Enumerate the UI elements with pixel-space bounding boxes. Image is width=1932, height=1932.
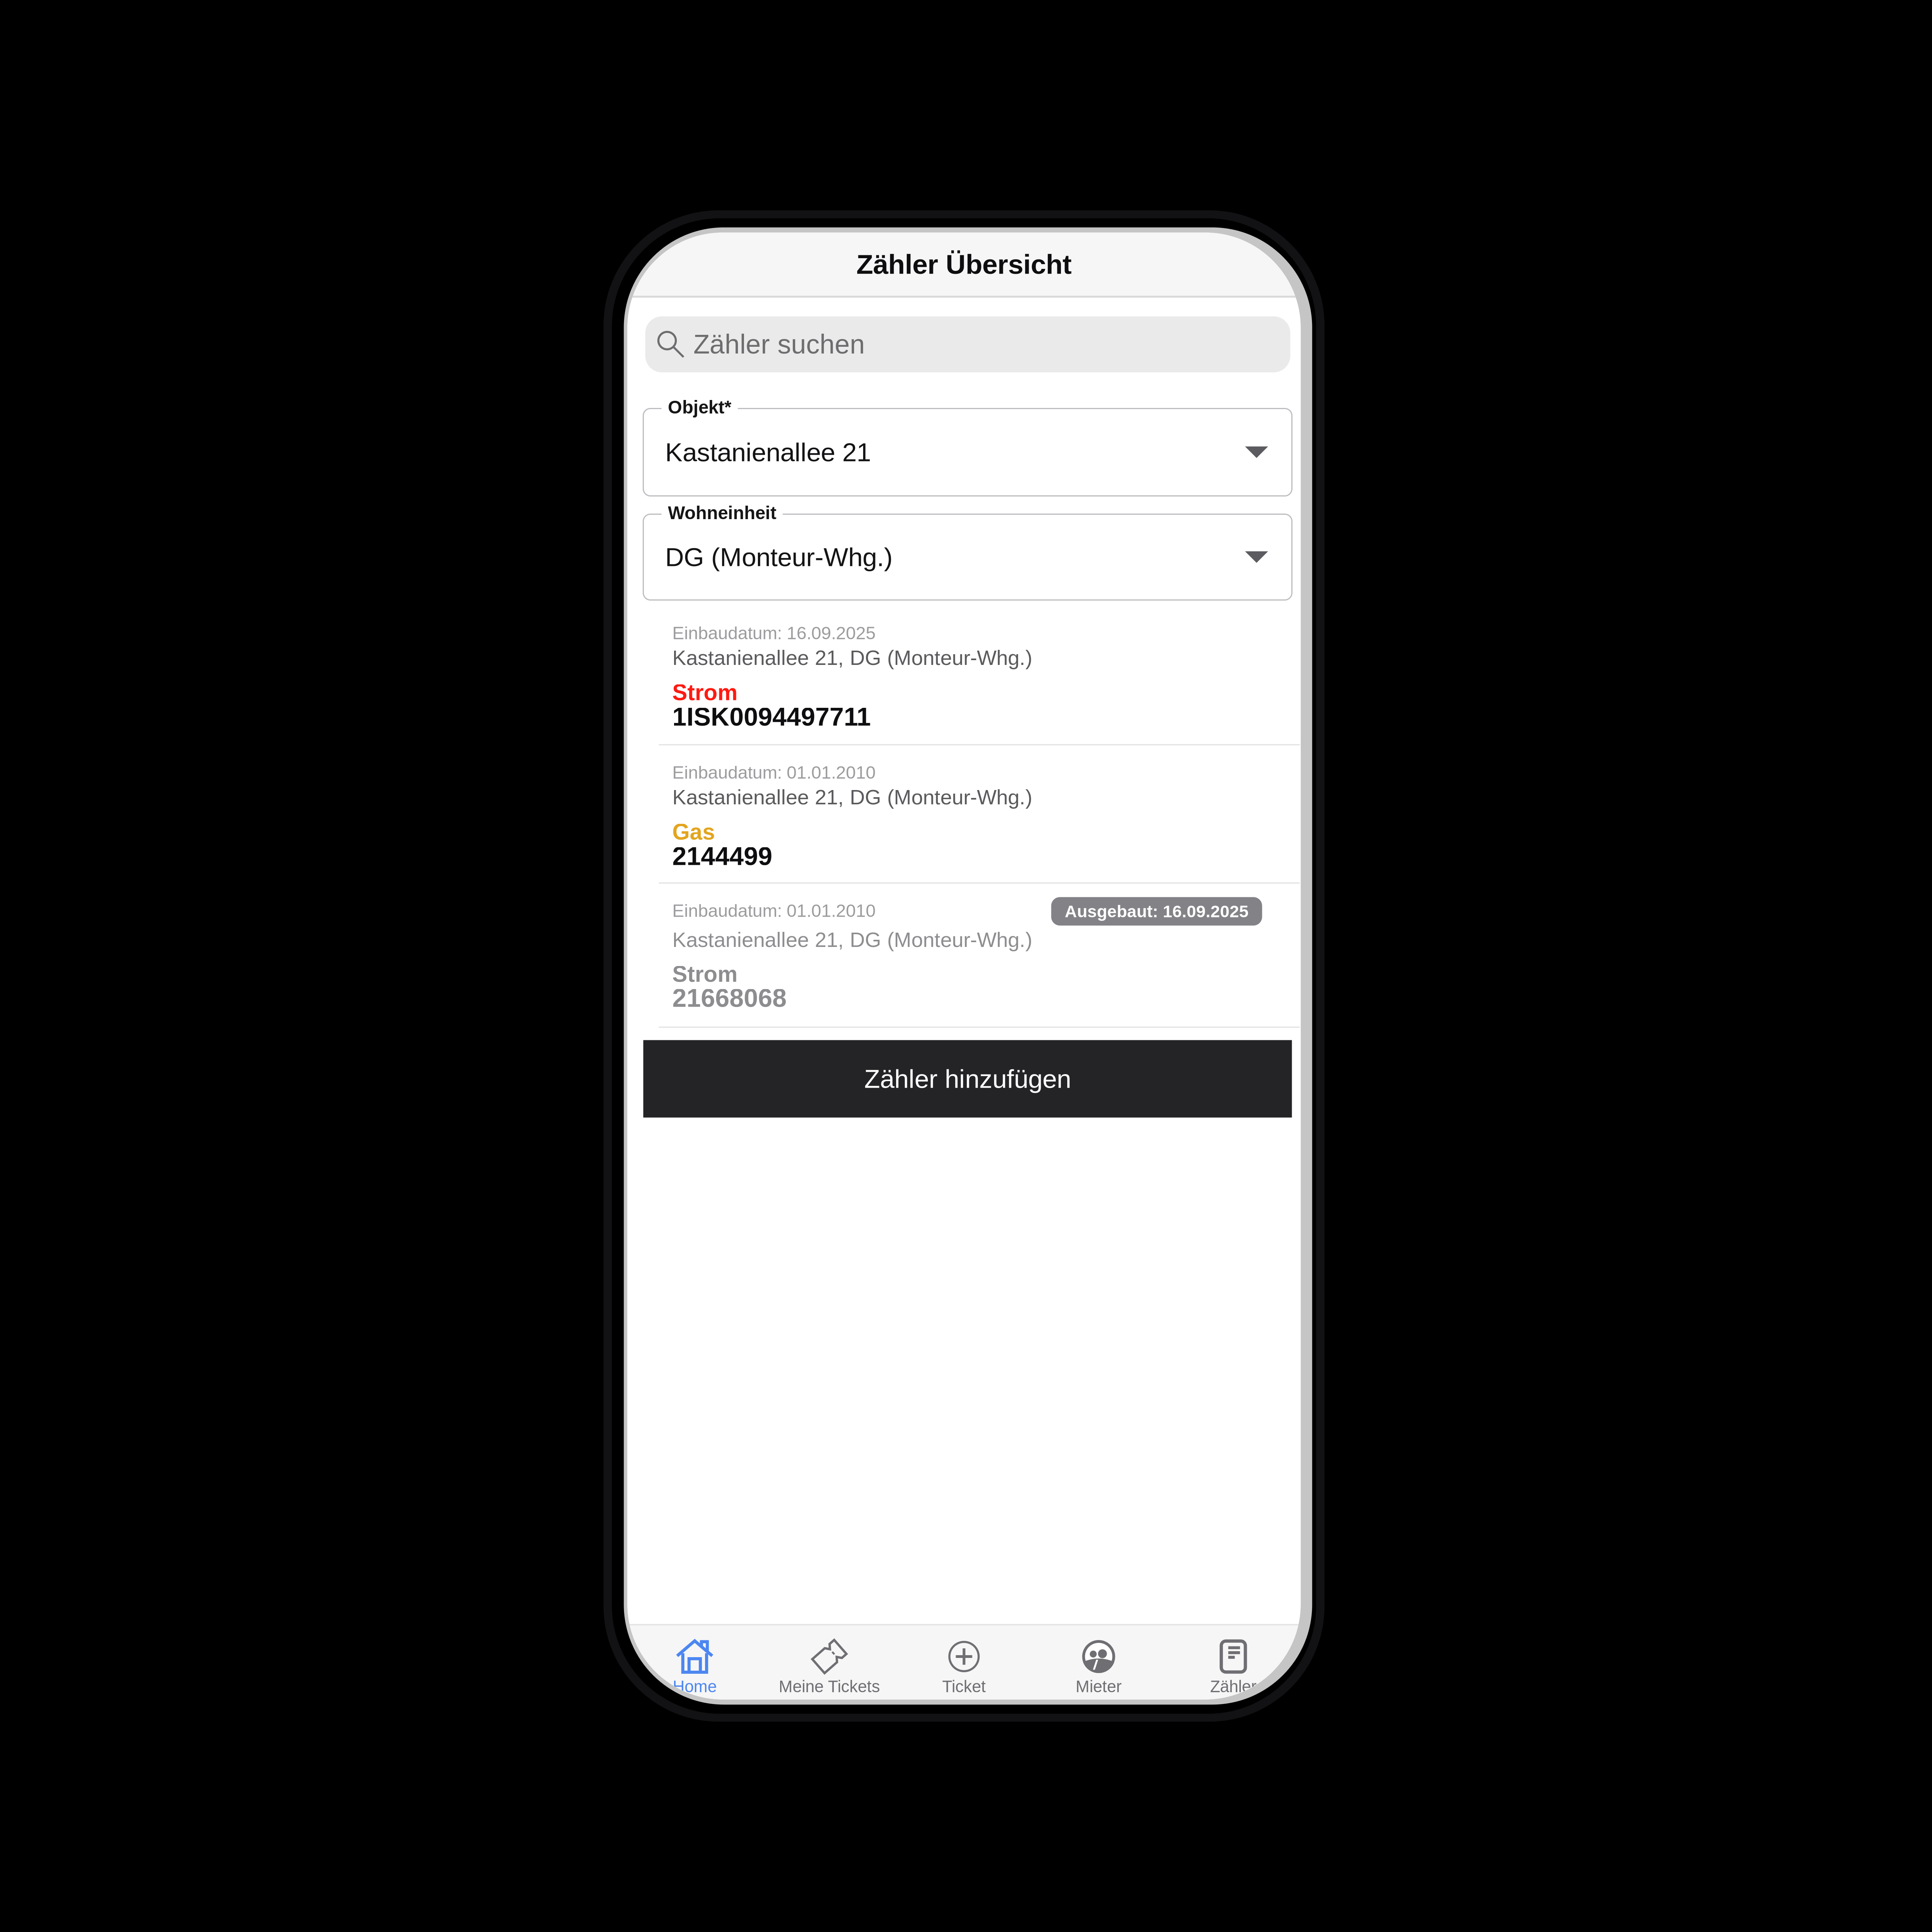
staticText: Strom [672, 680, 737, 705]
staticText: Einbaudatum: 16.09.2025 [672, 623, 876, 643]
button[interactable]: DG (Monteur-Whg.) [643, 514, 1292, 600]
staticText: Kastanienallee 21 [665, 438, 871, 467]
staticText: DG (Monteur-Whg.) [665, 543, 893, 572]
button[interactable]: Ticket [897, 1626, 1031, 1699]
button[interactable]: Einbaudatum: 01.01.2010 [627, 884, 1301, 1027]
staticText: Ausgebaut: 16.09.2025 [1065, 902, 1249, 921]
staticText: Zähler [1210, 1677, 1257, 1696]
staticText: Gas [672, 819, 715, 844]
button[interactable]: Zähler [1166, 1626, 1301, 1699]
button[interactable]: Kastanienallee 21 [643, 409, 1292, 496]
staticText: 2144499 [672, 842, 772, 870]
staticText: Mieter [1076, 1677, 1122, 1696]
staticText: 21668068 [672, 984, 787, 1012]
button[interactable]: Einbaudatum: 01.01.2010 [627, 745, 1301, 882]
button[interactable]: Einbaudatum: 16.09.2025 [627, 606, 1301, 744]
staticText: Zähler hinzufügen [864, 1064, 1071, 1093]
button[interactable]: Home [627, 1626, 762, 1699]
staticText: Kastanienallee 21, DG (Monteur-Whg.) [672, 646, 1032, 669]
staticText: Zähler suchen [693, 329, 865, 359]
button[interactable]: Mieter [1031, 1626, 1166, 1699]
staticText: Home [673, 1677, 717, 1696]
button[interactable]: Zähler suchen [645, 316, 1290, 372]
staticText: Einbaudatum: 01.01.2010 [672, 762, 876, 782]
staticText: Meine Tickets [779, 1677, 880, 1696]
staticText: Einbaudatum: 01.01.2010 [672, 901, 876, 921]
staticText: Kastanienallee 21, DG (Monteur-Whg.) [672, 928, 1032, 951]
staticText: Strom [672, 961, 737, 987]
button[interactable]: Meine Tickets [762, 1626, 897, 1699]
staticText: Kastanienallee 21, DG (Monteur-Whg.) [672, 785, 1032, 809]
staticText: Zähler Übersicht [856, 249, 1072, 280]
staticText: Wohneinheit [668, 503, 776, 523]
staticText: Ticket [942, 1677, 986, 1696]
staticText: 1ISK0094497711 [672, 702, 871, 731]
staticText: Objekt* [668, 397, 731, 417]
button[interactable]: Zähler hinzufügen [643, 1040, 1292, 1118]
